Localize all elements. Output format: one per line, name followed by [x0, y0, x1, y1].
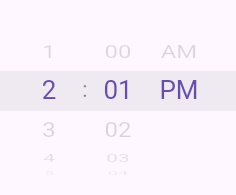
- staticText: 3: [20, 117, 77, 141]
- button[interactable]: 01: [87, 76, 149, 107]
- staticText: :: [65, 77, 105, 103]
- button[interactable]: 3: [20, 118, 77, 143]
- button[interactable]: 03: [93, 151, 143, 165]
- staticText: 00: [89, 41, 146, 62]
- button[interactable]: 04: [96, 171, 140, 176]
- button[interactable]: 4: [24, 151, 74, 165]
- button[interactable]: 00: [89, 42, 146, 63]
- staticText: 4: [24, 151, 74, 165]
- button[interactable]: AM: [150, 42, 207, 63]
- staticText: 04: [96, 171, 140, 176]
- staticText: 1: [20, 41, 77, 62]
- staticText: 2: [18, 75, 80, 105]
- button[interactable]: PM: [148, 76, 210, 107]
- staticText: 03: [93, 151, 143, 165]
- button[interactable]: 1: [20, 42, 77, 63]
- staticText: AM: [150, 41, 207, 62]
- button[interactable]: 02: [89, 118, 146, 143]
- staticText: 01: [87, 75, 149, 105]
- staticText: PM: [148, 75, 210, 105]
- button[interactable]: 2: [18, 76, 80, 107]
- staticText: 02: [89, 117, 146, 141]
